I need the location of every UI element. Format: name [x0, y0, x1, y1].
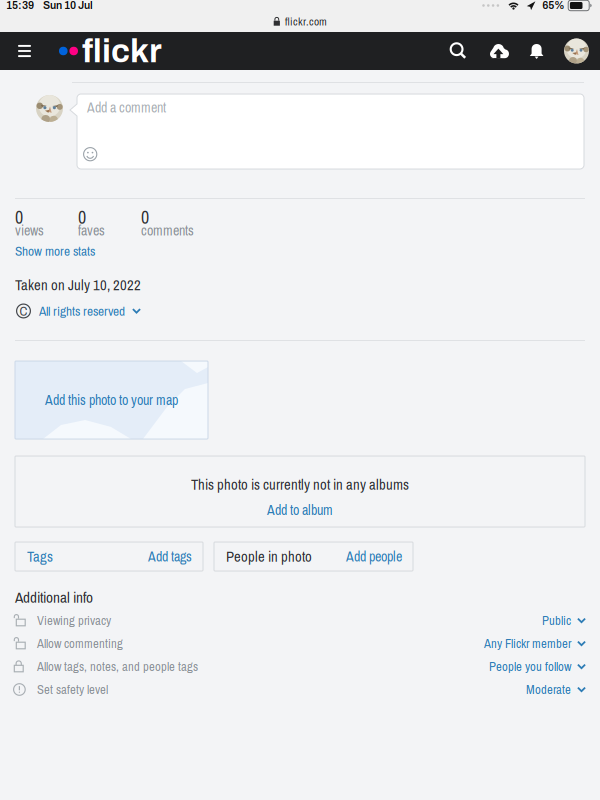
button[interactable]: flickr home — [59, 32, 162, 70]
button[interactable]: Address flickr.com — [0, 15, 600, 28]
button[interactable]: Allow commenting — [0, 632, 600, 655]
staticText: Add a comment — [87, 98, 166, 117]
staticText: Any Flickr member — [484, 635, 571, 652]
button[interactable]: Tags — [15, 542, 203, 571]
staticText: This photo is currently not in any album… — [191, 475, 409, 494]
button[interactable]: Upload — [485, 32, 511, 70]
staticText: Add this photo to your map — [45, 391, 178, 409]
staticText: Add tags — [148, 547, 192, 566]
staticText: Add to album — [267, 500, 333, 519]
button[interactable]: Viewing privacy — [0, 609, 600, 632]
staticText: faves — [78, 221, 105, 240]
button[interactable]: Set safety level — [0, 678, 600, 701]
button[interactable]: Search — [445, 32, 471, 70]
staticText: Tags — [27, 547, 53, 566]
staticText: 0 — [141, 205, 149, 229]
button[interactable]: This photo is currently not in any album… — [15, 456, 585, 527]
staticText: People in photo — [226, 547, 312, 566]
staticText: flickr.com — [285, 14, 327, 29]
button[interactable]: Show more stats — [15, 242, 95, 260]
staticText: Add people — [346, 547, 402, 566]
staticText: C — [19, 302, 27, 320]
button[interactable]: C — [16, 302, 141, 320]
staticText: Public — [542, 612, 571, 629]
staticText: Show more stats — [15, 242, 95, 260]
staticText: All rights reserved — [39, 302, 125, 320]
button[interactable]: Your profile — [564, 32, 589, 70]
button[interactable]: Notifications — [525, 32, 549, 70]
staticText: views — [15, 221, 44, 240]
button[interactable]: Allow tags, notes, and people tags — [0, 655, 600, 678]
staticText: Additional info — [15, 587, 93, 608]
staticText: 65% — [542, 0, 564, 11]
staticText: 15:39 — [6, 0, 34, 11]
staticText: 0 — [15, 205, 23, 229]
staticText: comments — [141, 221, 194, 240]
staticText: Taken on July 10, 2022 — [15, 275, 141, 295]
staticText: flickr — [82, 33, 162, 69]
staticText: Viewing privacy — [37, 612, 111, 629]
staticText: Allow tags, notes, and people tags — [37, 658, 198, 675]
staticText: Moderate — [526, 681, 571, 698]
staticText: Allow commenting — [37, 635, 123, 652]
staticText: Set safety level — [37, 681, 108, 698]
button[interactable]: Menu — [11, 32, 38, 70]
button[interactable]: Add this photo to your map — [15, 361, 208, 439]
button[interactable]: People in photo — [214, 542, 413, 571]
staticText: 0 — [78, 205, 86, 229]
staticText: People you follow — [489, 658, 571, 675]
staticText: Sun 10 Jul — [43, 0, 93, 11]
